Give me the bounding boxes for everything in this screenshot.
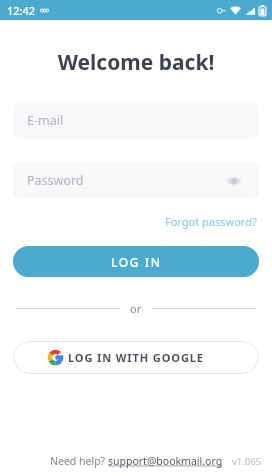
- staticText: Forgot password?: [165, 214, 257, 229]
- staticText: support@bookmail.org: [108, 454, 223, 468]
- staticText: or: [130, 301, 142, 316]
- staticText: LOG IN WITH GOOGLE: [68, 350, 204, 365]
- button[interactable]: LOG IN: [13, 246, 259, 277]
- button[interactable]: E-mail: [13, 102, 259, 139]
- staticText: Welcome back!: [0, 48, 272, 77]
- staticText: E-mail: [27, 112, 64, 129]
- button[interactable]: LOG IN WITH GOOGLE: [13, 341, 259, 374]
- button[interactable]: Need help?: [50, 454, 223, 468]
- staticText: Password: [27, 172, 84, 189]
- staticText: LOG IN: [111, 254, 162, 270]
- button[interactable]: Forgot password?: [163, 211, 259, 232]
- staticText: v1.065: [232, 455, 262, 468]
- staticText: Need help?: [50, 454, 108, 468]
- button[interactable]: Show password: [223, 170, 245, 192]
- staticText: 12:42: [7, 3, 36, 18]
- button[interactable]: Password: [13, 162, 259, 199]
